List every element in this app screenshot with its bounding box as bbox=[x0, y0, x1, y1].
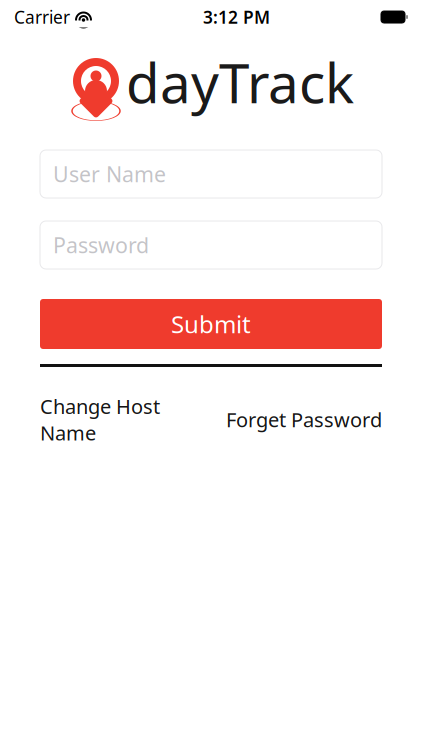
staticText: Forget Password bbox=[226, 406, 382, 433]
staticText: Submit bbox=[171, 308, 251, 340]
staticText: 3:12 PM bbox=[203, 5, 270, 28]
button[interactable]: User Name bbox=[40, 150, 382, 198]
button[interactable]: Forget Password bbox=[226, 406, 382, 433]
staticText: User Name bbox=[53, 160, 166, 188]
button[interactable]: Password bbox=[40, 221, 382, 269]
button[interactable]: Submit bbox=[40, 299, 382, 349]
staticText: Carrier bbox=[14, 5, 70, 28]
button[interactable]: Change Host Name bbox=[40, 393, 160, 446]
staticText: dayTrack bbox=[126, 46, 354, 118]
staticText: Change Host Name bbox=[40, 393, 160, 446]
staticText: Password bbox=[53, 231, 149, 259]
